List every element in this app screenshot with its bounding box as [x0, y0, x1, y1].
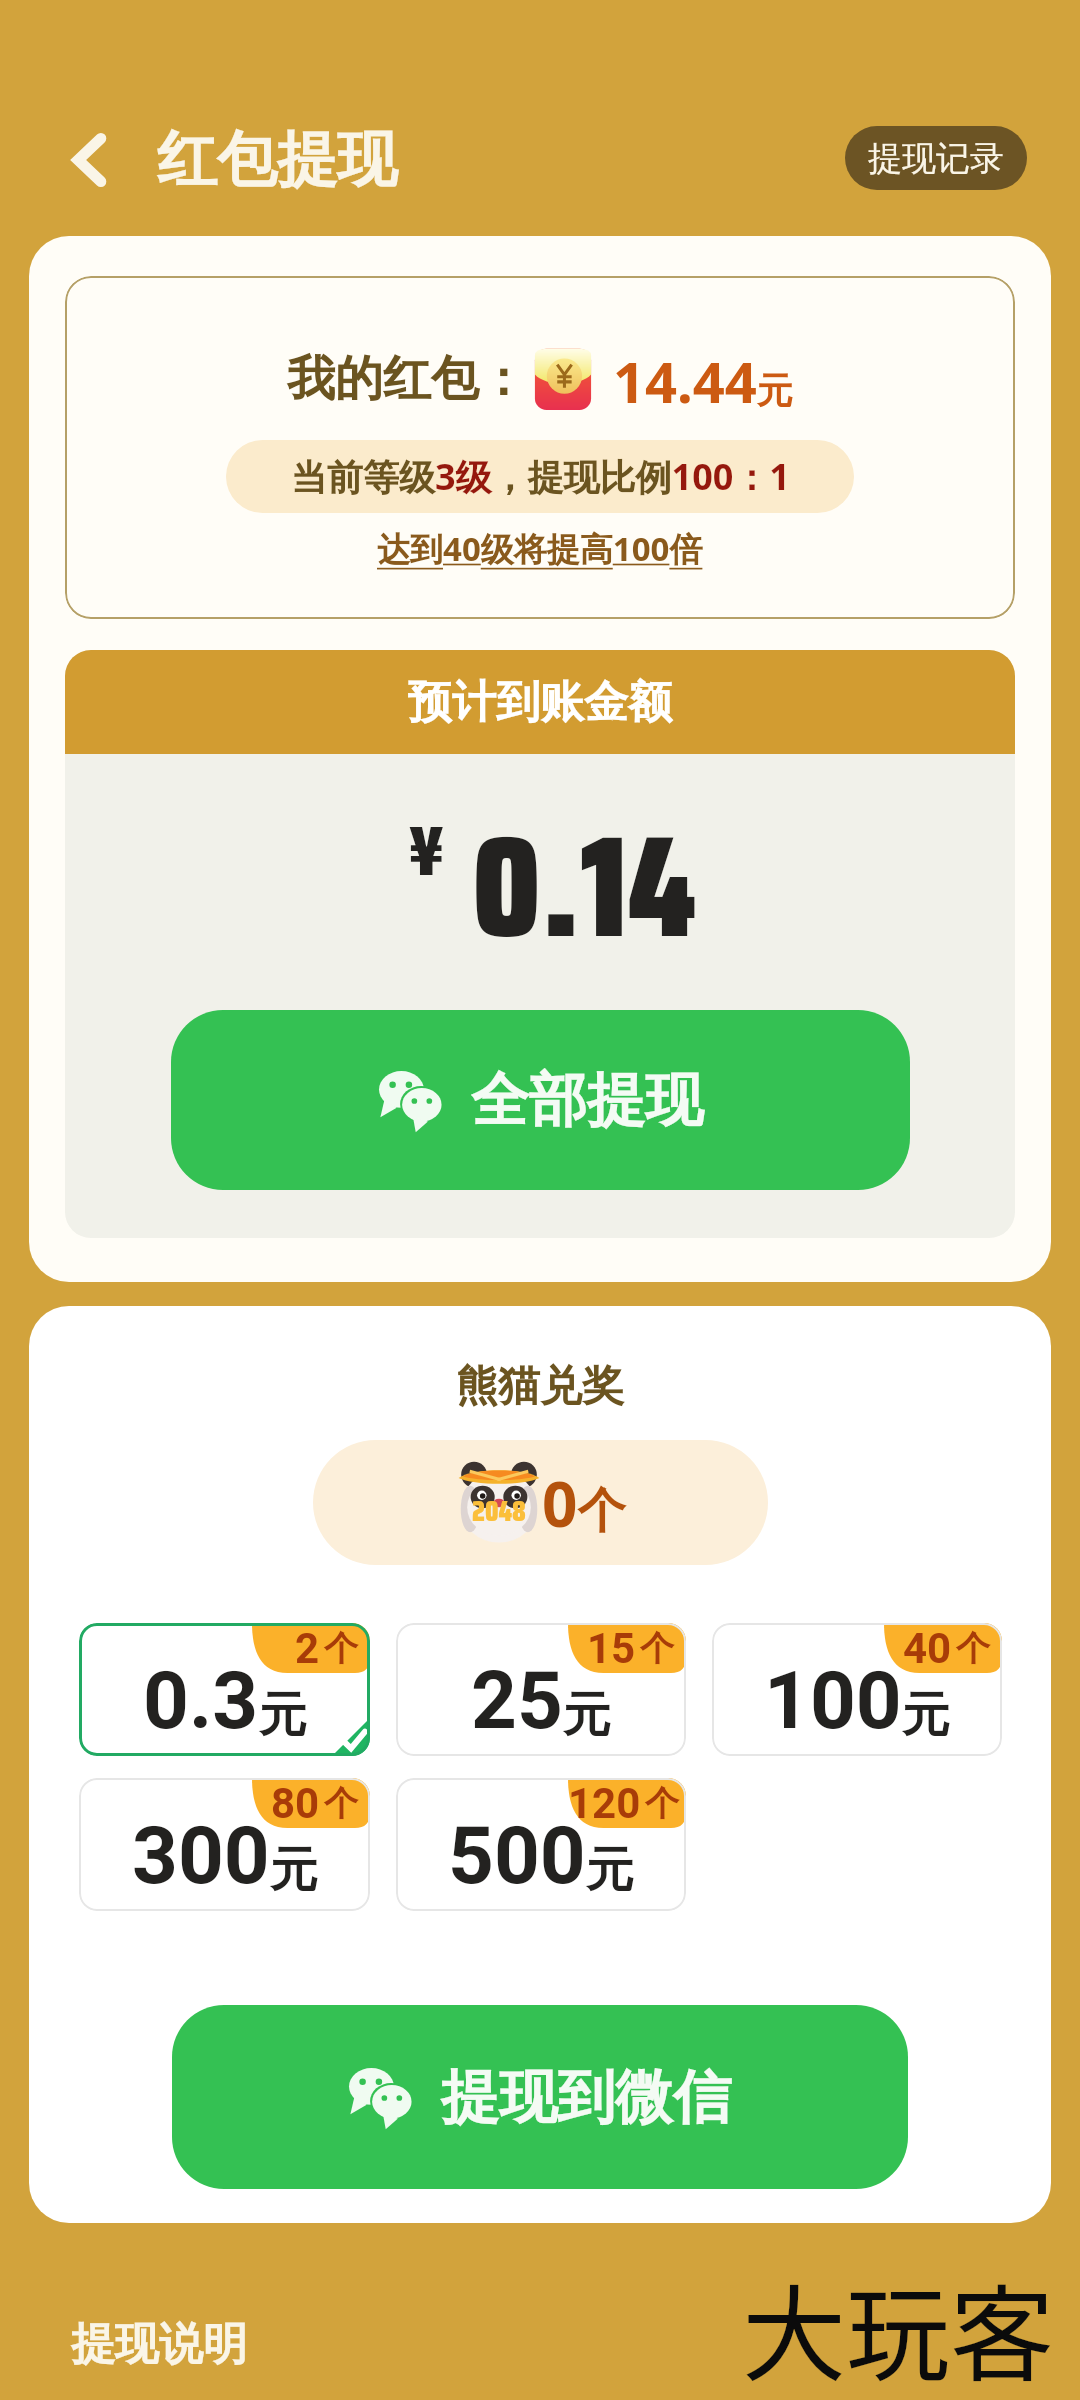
button[interactable]: 15 [396, 1623, 686, 1756]
staticText: 元 [586, 1840, 634, 1900]
staticText: 我的红包： [287, 349, 527, 409]
staticText: 大玩客 [742, 2252, 1055, 2400]
staticText: 500 [448, 1809, 586, 1903]
staticText: 个 [956, 1627, 990, 1670]
button[interactable]: 全部提现 [171, 1010, 910, 1190]
staticText: 25 [471, 1654, 563, 1748]
staticText: 提现记录 [868, 137, 1004, 180]
button[interactable]: 80 [79, 1778, 370, 1911]
staticText: 元 [270, 1840, 318, 1900]
staticText: 0.14 [472, 774, 696, 999]
staticText: 14.44元 [613, 343, 793, 415]
staticText: 120 [568, 1779, 641, 1828]
staticText: 2048 [472, 1489, 526, 1533]
staticText: 个 [645, 1782, 674, 1825]
staticText: 15 [587, 1624, 636, 1673]
staticText: 当前等级3级，提现比例100：1 [291, 452, 790, 501]
staticText: 元 [902, 1685, 950, 1745]
staticText: 0个 [542, 1461, 626, 1545]
staticText: 40 [903, 1624, 952, 1673]
staticText: 个 [324, 1627, 358, 1670]
button[interactable]: Back [56, 126, 124, 194]
button[interactable]: 提现到微信 [172, 2005, 908, 2189]
button[interactable]: 120 [396, 1778, 686, 1911]
button[interactable]: 提现记录 [845, 126, 1027, 190]
staticText: 300 [132, 1809, 270, 1903]
staticText: 全部提现 [471, 1064, 703, 1137]
staticText: 熊猫兑奖 [456, 1360, 624, 1413]
button[interactable]: 40 [712, 1623, 1002, 1756]
staticText: 提现到微信 [441, 2061, 731, 2134]
staticText: 2 [295, 1624, 320, 1673]
staticText: 预计到账金额 [408, 675, 672, 730]
staticText: 100 [764, 1654, 902, 1748]
staticText: 80 [271, 1779, 320, 1828]
staticText: ¥ [408, 796, 445, 906]
button[interactable]: 提现说明 [71, 2317, 247, 2372]
button[interactable]: 2 [79, 1623, 370, 1756]
staticText: 0.3 [143, 1654, 259, 1748]
staticText: 个 [324, 1782, 358, 1825]
staticText: 元 [259, 1685, 307, 1745]
staticText: 元 [563, 1685, 611, 1745]
staticText: 红包提现 [157, 122, 397, 198]
button[interactable]: 达到40级将提高100倍 [377, 526, 703, 571]
staticText: 个 [640, 1627, 674, 1670]
